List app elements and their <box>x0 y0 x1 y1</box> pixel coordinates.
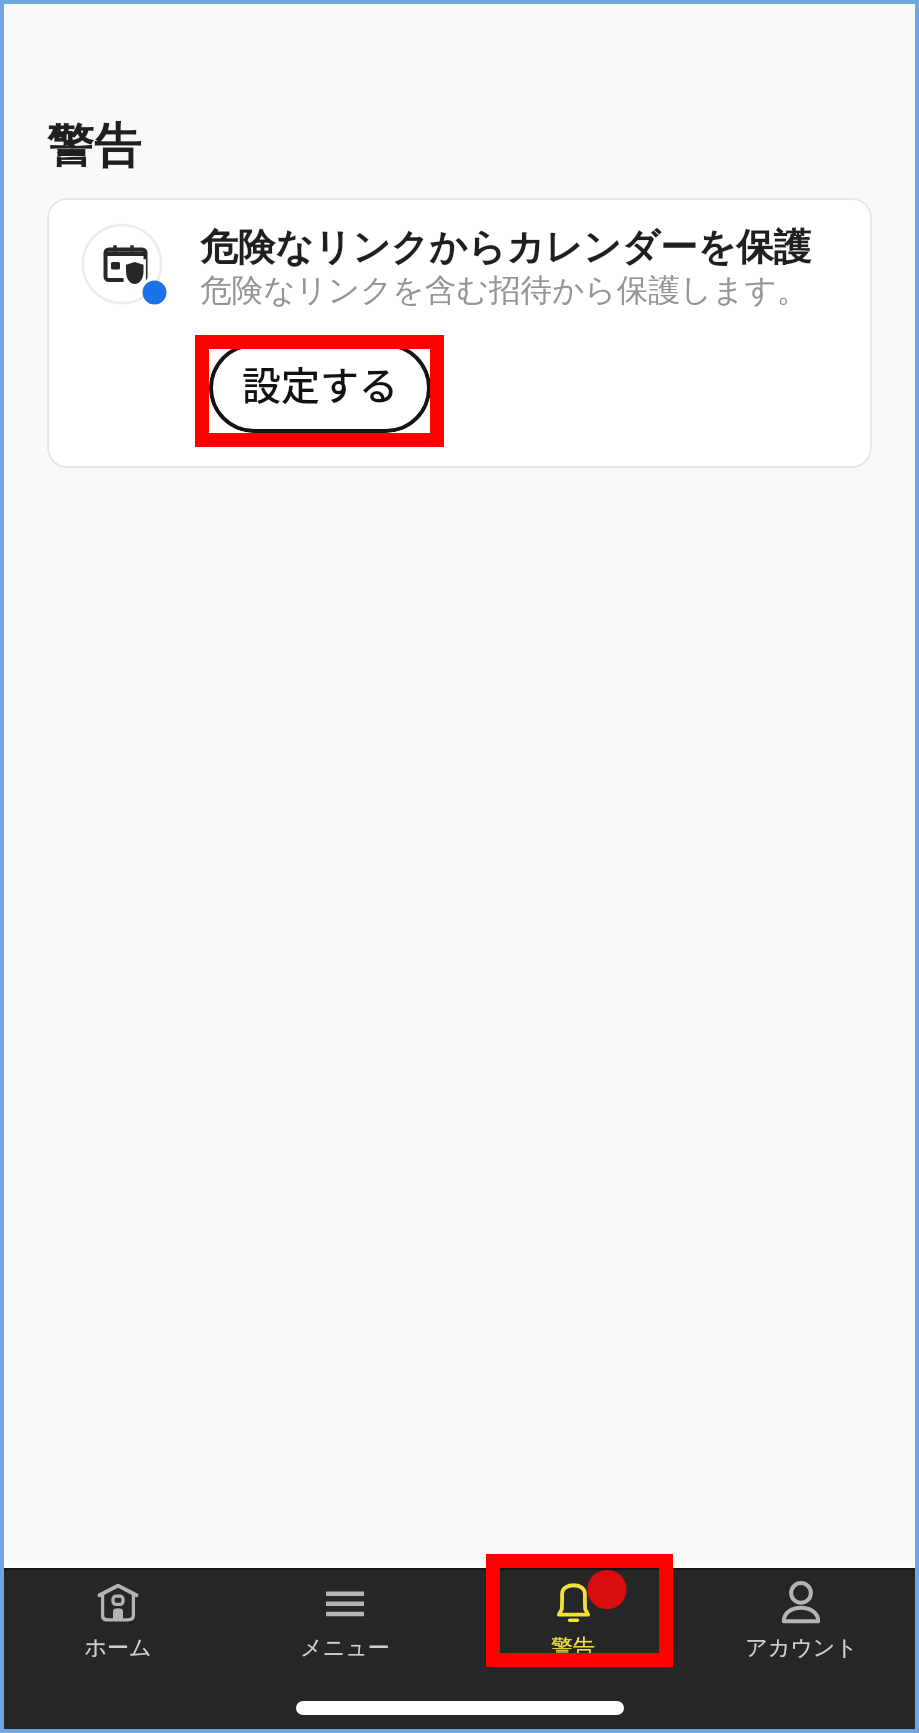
staticText: 警告 <box>47 117 141 176</box>
staticText: 危険なリンクからカレンダーを保護 <box>200 224 812 271</box>
button[interactable]: メニュー <box>231 1568 459 1729</box>
staticText: 設定する <box>242 355 399 411</box>
staticText: 警告 <box>551 1634 595 1662</box>
button[interactable]: アカウント <box>687 1568 915 1729</box>
other: カレンダー保護 <box>82 224 182 324</box>
staticText: 危険なリンクを含む招待から保護します。 <box>200 271 809 311</box>
staticText: メニュー <box>300 1634 390 1662</box>
button[interactable]: 警告 <box>459 1568 687 1729</box>
staticText: アカウント <box>745 1634 858 1662</box>
button[interactable]: 設定する <box>209 343 431 433</box>
button[interactable]: ホーム <box>4 1568 231 1729</box>
staticText: ホーム <box>84 1634 152 1662</box>
